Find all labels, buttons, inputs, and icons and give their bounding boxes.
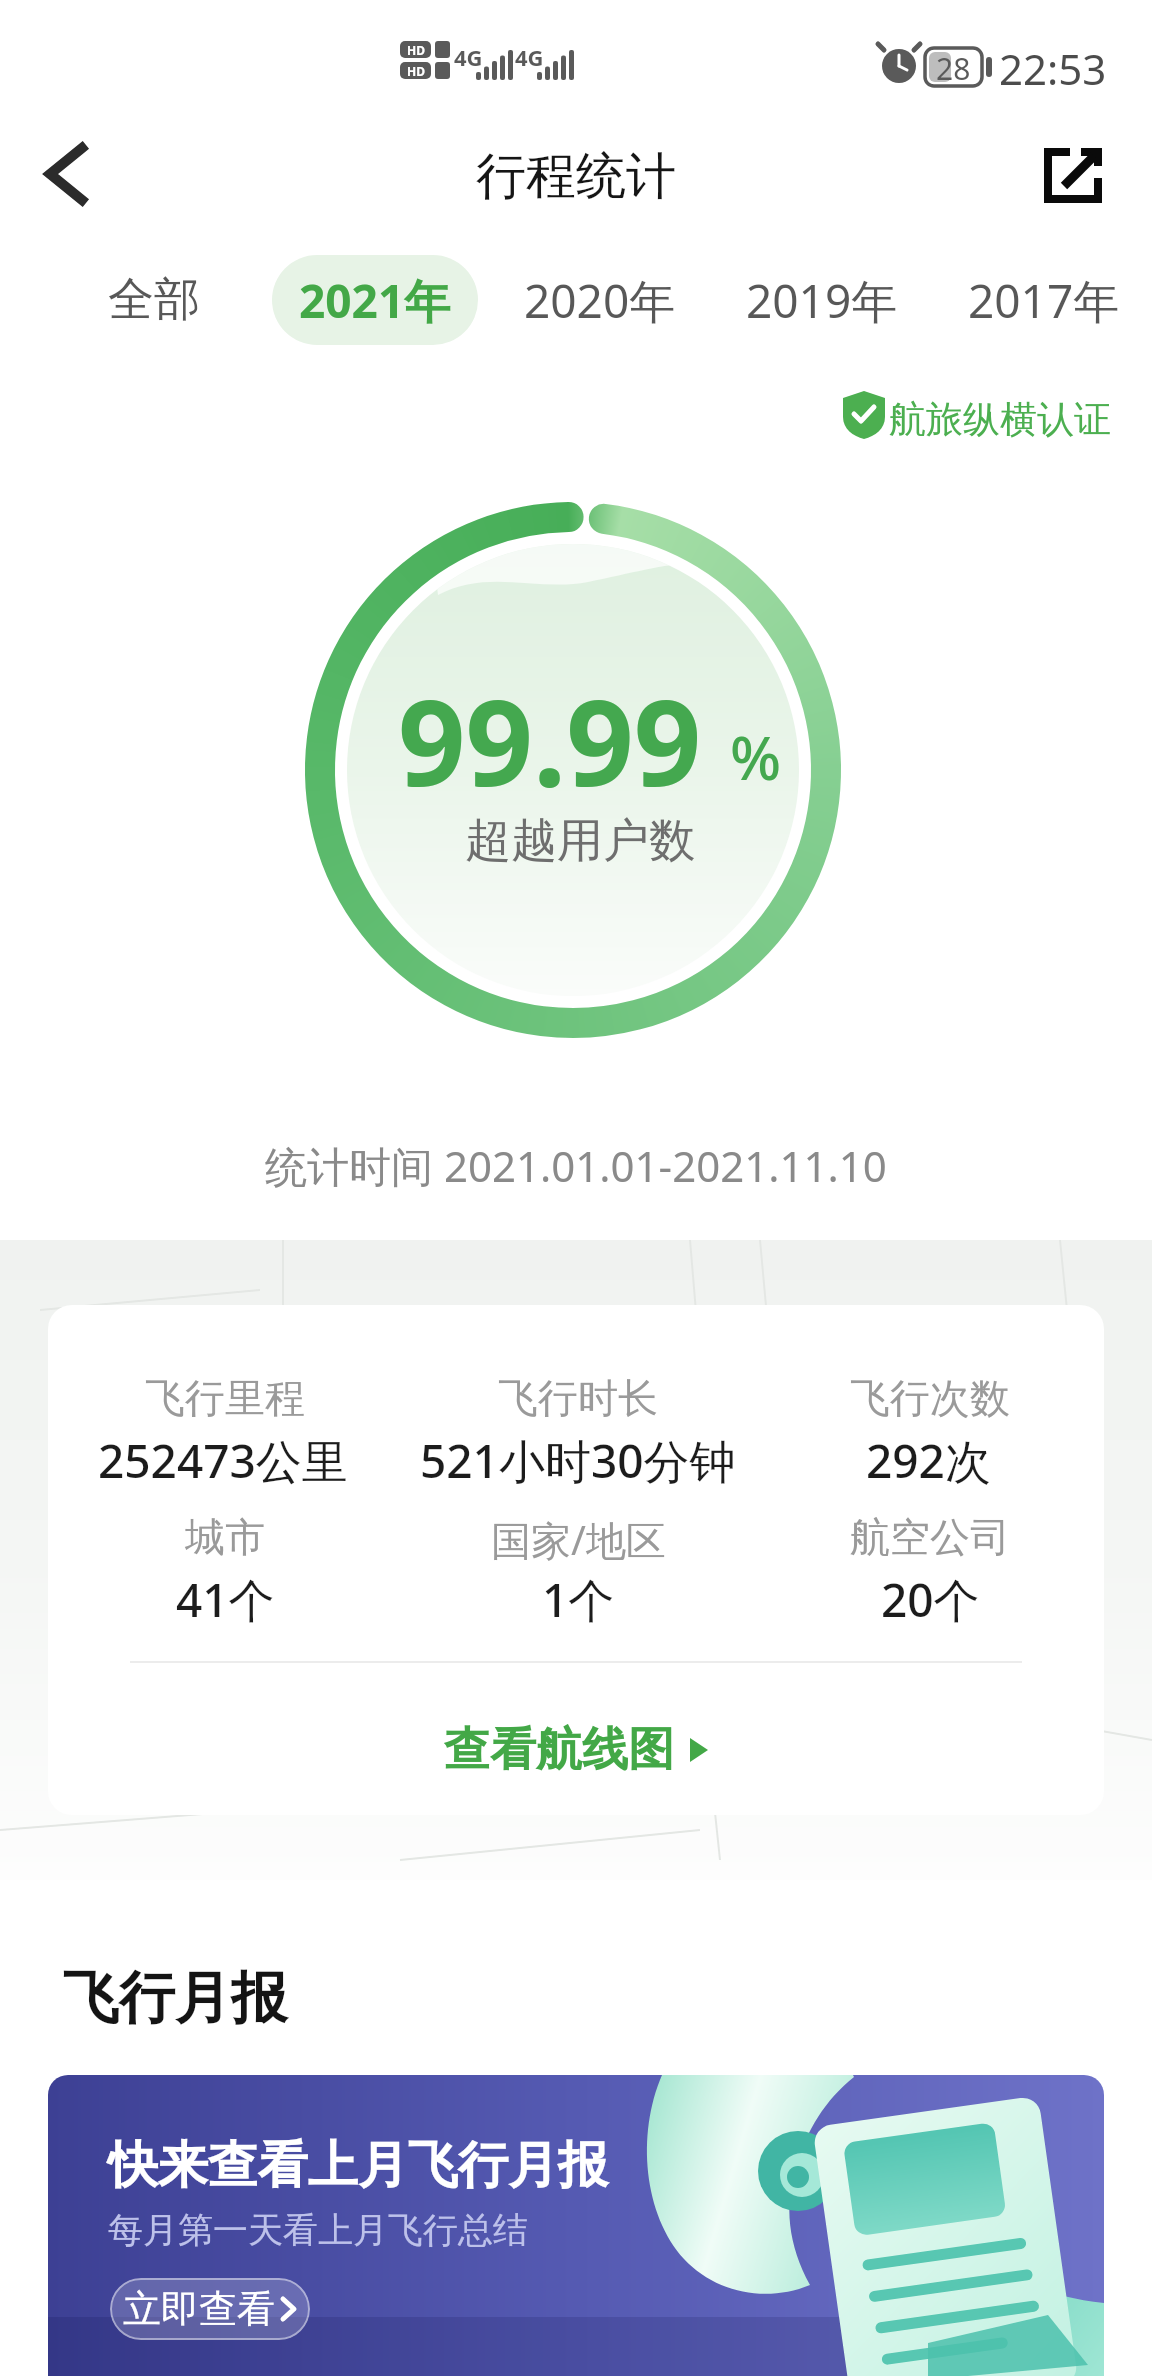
button[interactable]: 快来查看上月飞行月报 <box>48 2075 1104 2376</box>
staticText: HD <box>407 63 425 79</box>
button[interactable]: 2017年 <box>966 255 1122 345</box>
staticText: 521小时30分钟 <box>420 1429 736 1487</box>
staticText: 2019年 <box>746 269 898 332</box>
staticText: % <box>730 716 782 798</box>
staticText: 1个 <box>542 1568 615 1626</box>
staticText: 20个 <box>881 1568 980 1626</box>
staticText: 22:53 <box>999 40 1107 92</box>
staticText: 全部 <box>108 271 200 329</box>
button[interactable] <box>28 130 118 220</box>
staticText: 2020年 <box>524 269 676 332</box>
staticText: 超越用户数 <box>465 812 695 870</box>
staticText: 28 <box>936 48 971 86</box>
button[interactable]: 飞行里程 <box>48 1305 1104 1815</box>
staticText: 行程统计 <box>476 145 676 208</box>
staticText: 4G <box>454 42 483 68</box>
button[interactable]: 2019年 <box>744 255 900 345</box>
button[interactable] <box>1026 130 1116 220</box>
button[interactable]: 2021年 <box>272 255 478 345</box>
staticText: 4G <box>515 42 544 68</box>
staticText: 飞行月报 <box>63 1963 287 2034</box>
staticText: HD <box>407 42 425 58</box>
staticText: 立即查看 <box>123 2285 275 2333</box>
staticText: 快来查看上月飞行月报 <box>108 2134 608 2197</box>
staticText: 每月第一天看上月飞行总结 <box>108 2208 528 2252</box>
staticText: 城市 <box>185 1512 265 1562</box>
staticText: 2017年 <box>968 269 1120 332</box>
staticText: 统计时间 2021.01.01-2021.11.10 <box>265 1137 887 1194</box>
staticText: 41个 <box>176 1568 275 1626</box>
staticText: 252473公里 <box>98 1429 348 1487</box>
staticText: 292次 <box>866 1429 991 1487</box>
button[interactable]: 立即查看 <box>110 2278 310 2340</box>
staticText: 飞行次数 <box>850 1373 1010 1423</box>
staticText: 航空公司 <box>850 1512 1010 1562</box>
button[interactable]: 全部 <box>96 255 212 345</box>
button[interactable]: 2020年 <box>522 255 678 345</box>
staticText: 99.99 <box>398 660 702 820</box>
button[interactable]: 查看航线图 <box>48 1720 1104 1780</box>
staticText: 查看航线图 <box>444 1721 674 1779</box>
staticText: 国家/地区 <box>491 1512 666 1562</box>
staticText: 飞行里程 <box>145 1373 305 1423</box>
staticText: 2021年 <box>299 269 451 332</box>
staticText: 飞行时长 <box>498 1373 658 1423</box>
staticText: 航旅纵横认证 <box>889 396 1111 438</box>
